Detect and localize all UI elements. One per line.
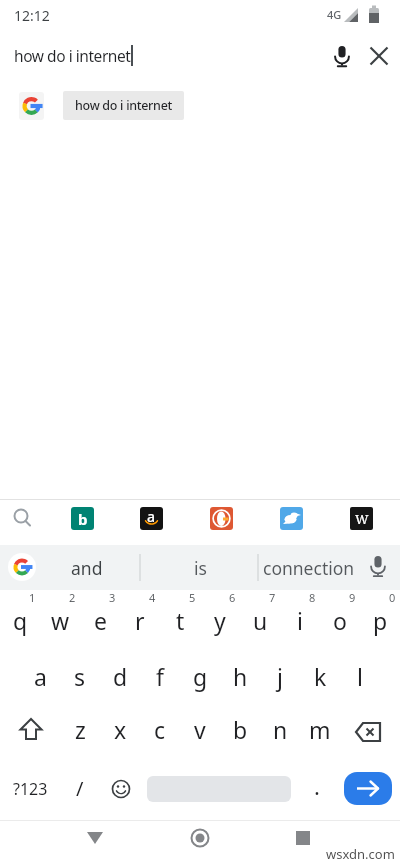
staticText: W xyxy=(355,510,369,528)
button[interactable]: b xyxy=(220,710,260,748)
button[interactable]: ?123 xyxy=(6,770,54,808)
staticText: . xyxy=(314,771,320,801)
staticText: g xyxy=(193,661,208,692)
button[interactable] xyxy=(8,504,36,532)
button[interactable]: connection xyxy=(259,545,359,590)
button[interactable]: / xyxy=(60,769,100,807)
button[interactable]: e xyxy=(80,601,120,639)
staticText: m xyxy=(309,714,331,745)
staticText: how do i internet xyxy=(75,97,172,114)
staticText: t xyxy=(176,605,185,636)
button[interactable]: w xyxy=(40,601,80,639)
staticText: h xyxy=(233,661,248,692)
staticText: k xyxy=(314,661,327,692)
button[interactable]: x xyxy=(100,710,140,748)
staticText: v xyxy=(194,714,206,745)
button[interactable]: r xyxy=(120,601,160,639)
staticText: and xyxy=(71,556,103,580)
staticText: x xyxy=(114,714,127,745)
button[interactable]: y xyxy=(200,601,240,639)
button[interactable]: h xyxy=(220,657,260,695)
staticText: d xyxy=(113,661,128,692)
staticText: s xyxy=(74,661,86,692)
button[interactable]: s xyxy=(60,657,100,695)
button[interactable]: how do i internet xyxy=(0,36,400,78)
staticText: b xyxy=(233,714,248,745)
staticText: 9 xyxy=(349,590,356,605)
button[interactable] xyxy=(346,712,392,752)
button[interactable]: how do i internet xyxy=(63,91,184,120)
staticText: q xyxy=(13,605,28,636)
button[interactable]: z xyxy=(60,710,100,748)
staticText: r xyxy=(135,605,145,636)
button[interactable]: d xyxy=(100,657,140,695)
staticText: a xyxy=(34,661,47,692)
button[interactable]: g xyxy=(180,657,220,695)
button[interactable]: l xyxy=(340,657,380,695)
button[interactable]: a xyxy=(20,657,60,695)
button[interactable]: o xyxy=(320,601,360,639)
staticText: 8 xyxy=(309,590,316,605)
staticText: i xyxy=(297,605,303,636)
button[interactable]: W xyxy=(350,507,373,530)
staticText: o xyxy=(333,605,347,636)
staticText: 7 xyxy=(269,590,276,605)
staticText: 1 xyxy=(29,590,36,605)
staticText: f xyxy=(156,661,164,692)
button[interactable]: q xyxy=(0,601,40,639)
button[interactable] xyxy=(8,553,36,581)
button[interactable]: . xyxy=(297,767,337,805)
button[interactable] xyxy=(8,712,54,752)
staticText: 12:12 xyxy=(14,6,50,25)
button[interactable] xyxy=(180,818,220,858)
button[interactable] xyxy=(19,92,44,120)
staticText: how do i internet xyxy=(14,45,131,66)
button[interactable]: and xyxy=(41,545,133,590)
button[interactable] xyxy=(75,818,115,858)
button[interactable]: k xyxy=(300,657,340,695)
staticText: 0 xyxy=(389,590,396,605)
staticText: b xyxy=(78,509,88,529)
staticText: 4G xyxy=(327,7,342,22)
staticText: a xyxy=(147,507,156,526)
button[interactable]: f xyxy=(140,657,180,695)
button[interactable]: c xyxy=(140,710,180,748)
button[interactable]: b xyxy=(71,507,94,530)
button[interactable]: m xyxy=(300,710,340,748)
button[interactable]: is xyxy=(144,545,256,590)
staticText: n xyxy=(273,714,288,745)
staticText: z xyxy=(75,714,86,745)
staticText: w xyxy=(51,605,70,636)
button[interactable]: j xyxy=(260,657,300,695)
staticText: wsxdn.com xyxy=(326,845,395,863)
button[interactable] xyxy=(280,507,303,530)
button[interactable] xyxy=(210,507,233,530)
staticText: ?123 xyxy=(13,778,48,800)
button[interactable]: i xyxy=(280,601,320,639)
staticText: / xyxy=(76,775,84,802)
staticText: 5 xyxy=(189,590,196,605)
staticText: e xyxy=(94,605,107,636)
button[interactable] xyxy=(344,772,392,805)
button[interactable]: u xyxy=(240,601,280,639)
button[interactable]: a xyxy=(140,507,163,530)
staticText: is xyxy=(194,556,207,580)
staticText: y xyxy=(214,605,226,636)
staticText: l xyxy=(357,661,363,692)
staticText: 4 xyxy=(149,590,156,605)
staticText: 6 xyxy=(229,590,236,605)
staticText: p xyxy=(373,605,388,636)
button[interactable]: t xyxy=(160,601,200,639)
button[interactable]: v xyxy=(180,710,220,748)
button[interactable] xyxy=(283,818,323,858)
button[interactable]: n xyxy=(260,710,300,748)
staticText: j xyxy=(277,661,283,692)
staticText: c xyxy=(154,714,166,745)
staticText: u xyxy=(253,605,268,636)
staticText: 3 xyxy=(109,590,116,605)
staticText: 2 xyxy=(69,590,76,605)
staticText: connection xyxy=(263,556,355,580)
button[interactable] xyxy=(102,770,140,808)
button[interactable]: p xyxy=(360,601,400,639)
